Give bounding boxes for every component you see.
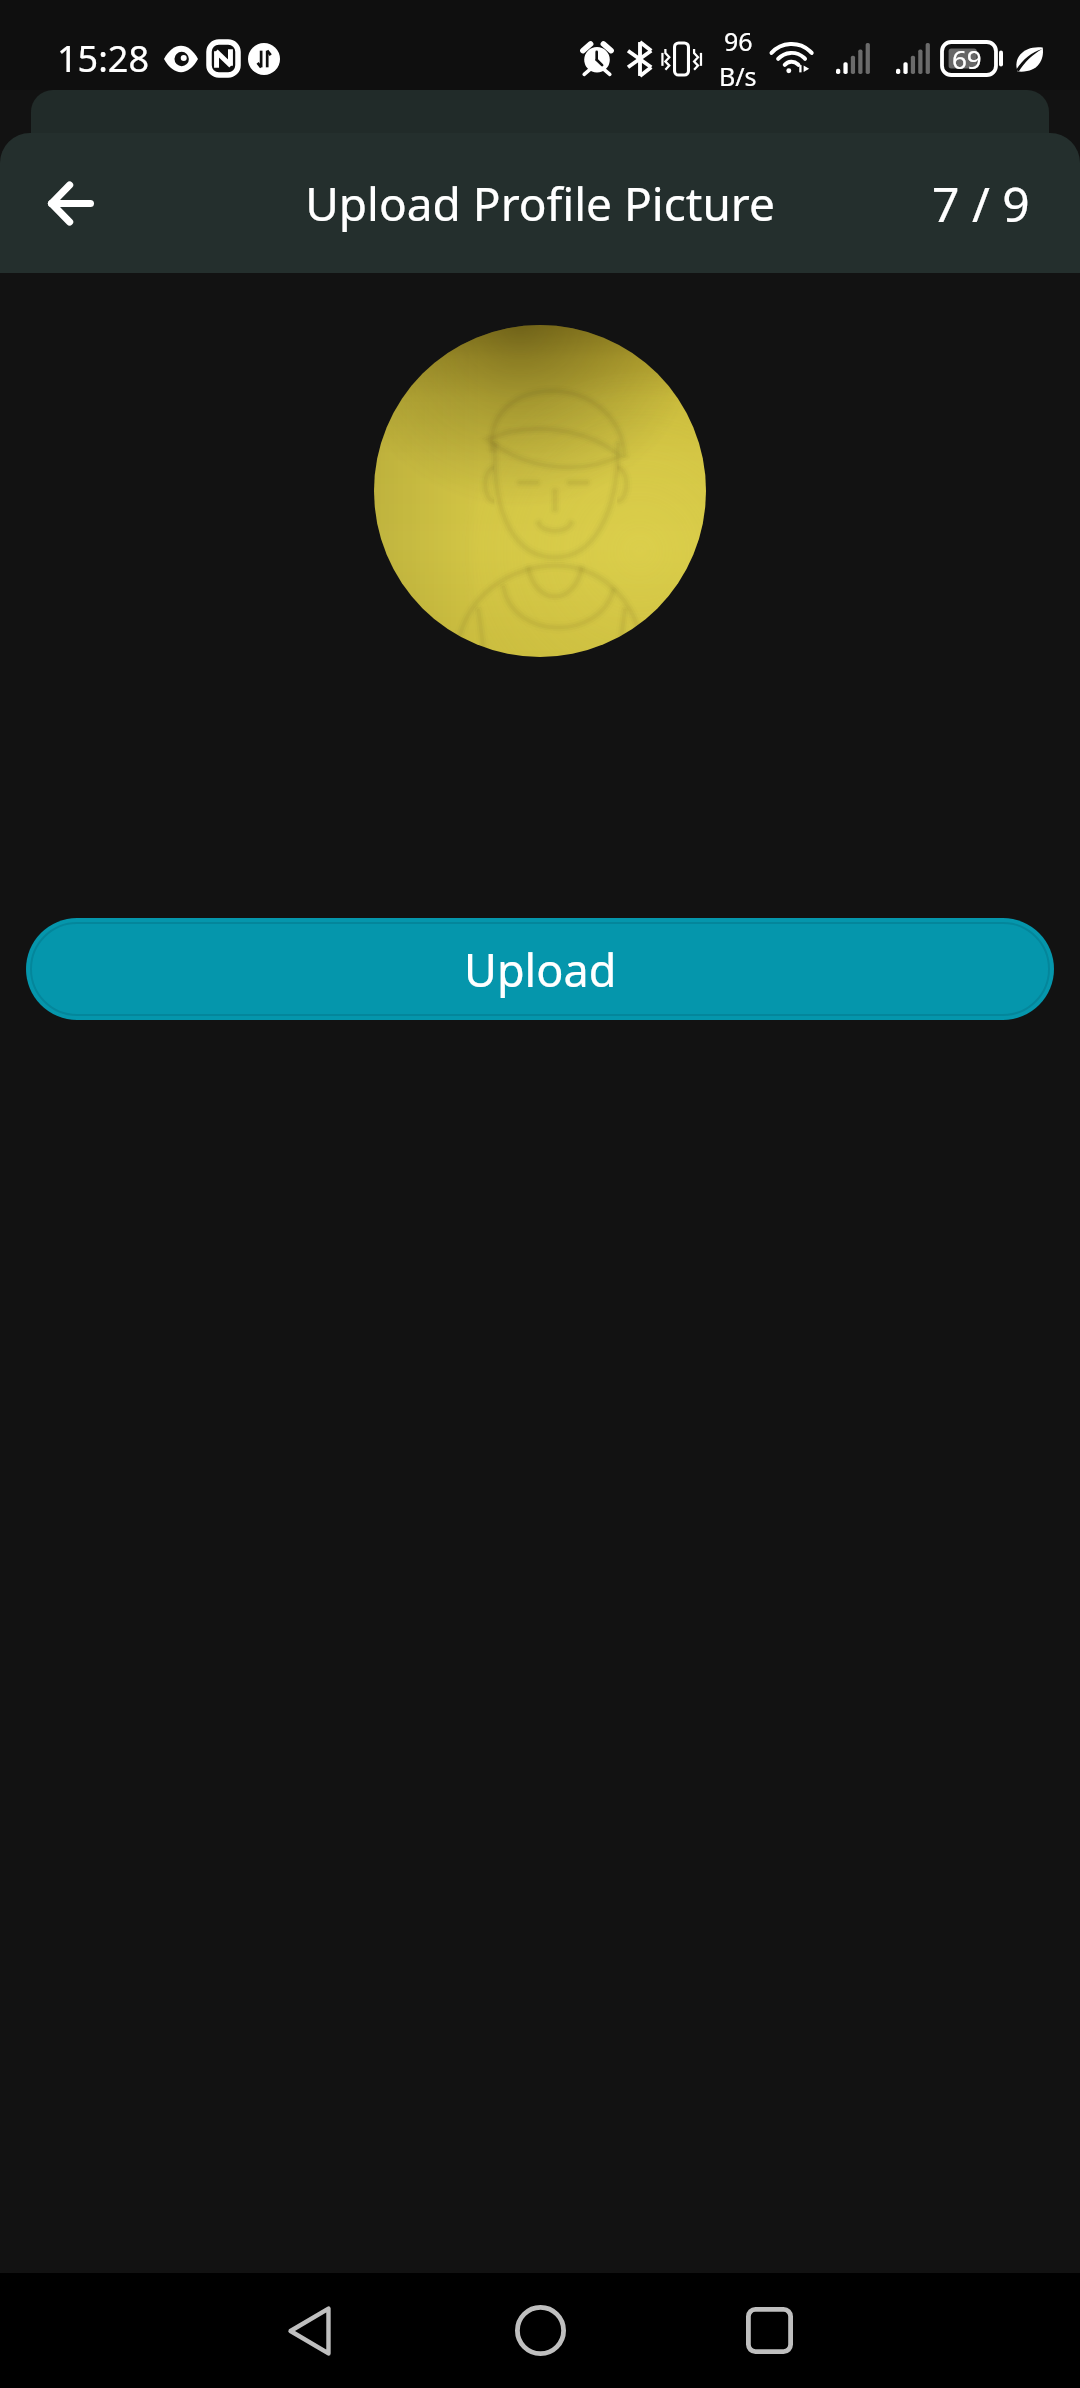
button[interactable]: Back <box>0 133 141 273</box>
staticText: Upload <box>464 939 617 1000</box>
button[interactable]: Home <box>483 2273 598 2388</box>
staticText: B/s <box>719 59 757 93</box>
button[interactable]: Upload <box>26 918 1054 1020</box>
button[interactable]: Recent apps <box>712 2273 827 2388</box>
button[interactable]: Back <box>252 2273 367 2388</box>
staticText: 69 <box>952 41 982 74</box>
staticText: 96 <box>724 24 753 58</box>
staticText: 7 / 9 <box>932 171 1030 236</box>
staticText: Upload Profile Picture <box>0 172 1080 235</box>
staticText: 15:28 <box>57 34 150 83</box>
